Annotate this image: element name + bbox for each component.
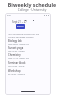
staticText: Fri 10:00 · Annex 3: [8, 73, 26, 76]
staticText: Biology lab: [8, 39, 22, 43]
button[interactable]: Chemistry: [8, 53, 48, 60]
staticText: Seminar block: [8, 61, 26, 65]
staticText: Chemistry: [8, 53, 21, 57]
staticText: Wed 11:15 · Room 102: [8, 57, 29, 60]
button[interactable]: Workshop: [8, 69, 48, 76]
button[interactable]: Biology: [16, 24, 25, 29]
staticText: Thu 16:00 · Hall B: [8, 65, 25, 68]
button[interactable]: Sunset yoga: [8, 46, 48, 53]
button[interactable]: Seminar block: [8, 61, 48, 68]
staticText: College · University: [0, 8, 64, 12]
staticText: Mon 09:00 · Room 214: [8, 43, 29, 46]
staticText: Your upcoming sessions for the: [8, 33, 39, 36]
staticText: Sunset yoga: [8, 46, 24, 50]
staticText: Tue 14:30 · Studio: [8, 50, 25, 53]
staticText: Biology: [17, 25, 24, 28]
staticText: Sept 21 – 27: [12, 20, 27, 24]
button[interactable]: Biology lab: [8, 39, 48, 46]
staticText: Biweekly schedule: [0, 1, 64, 8]
staticText: 9:41: [7, 14, 12, 17]
staticText: current two-week rotation: [8, 36, 34, 39]
staticText: Workshop: [8, 69, 21, 73]
